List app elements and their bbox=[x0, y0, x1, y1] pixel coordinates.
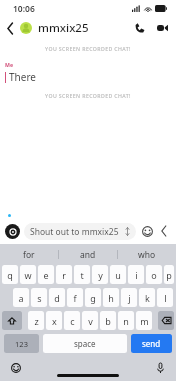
button[interactable]: Profile photo bbox=[20, 22, 32, 34]
staticText: who bbox=[138, 249, 156, 261]
button[interactable]: n bbox=[118, 311, 134, 330]
staticText: u bbox=[115, 269, 121, 281]
staticText: l bbox=[164, 292, 167, 304]
staticText: g bbox=[90, 292, 96, 304]
staticText: s bbox=[37, 292, 42, 304]
staticText: f bbox=[73, 292, 77, 304]
staticText: Me bbox=[5, 61, 13, 68]
staticText: space bbox=[74, 338, 96, 349]
staticText: for bbox=[23, 249, 35, 261]
button[interactable]: for bbox=[0, 244, 58, 265]
button[interactable]: Audio call bbox=[129, 17, 151, 39]
staticText: q bbox=[7, 269, 13, 281]
staticText: j bbox=[128, 292, 131, 304]
staticText: h bbox=[108, 292, 114, 304]
button[interactable]: m bbox=[136, 311, 152, 330]
button[interactable]: f bbox=[67, 288, 83, 307]
button[interactable]: i bbox=[128, 265, 144, 284]
button[interactable]: Video call bbox=[151, 17, 173, 39]
staticText: b bbox=[105, 315, 111, 327]
staticText: o bbox=[151, 269, 157, 281]
staticText: t bbox=[80, 269, 84, 281]
button[interactable]: Camera bbox=[5, 224, 20, 239]
staticText: n bbox=[123, 315, 129, 327]
button[interactable]: Collapse bbox=[157, 224, 171, 238]
staticText: p bbox=[166, 269, 172, 281]
staticText: 10:06 bbox=[13, 3, 35, 15]
staticText: There bbox=[9, 70, 36, 84]
staticText: m bbox=[140, 315, 149, 327]
button[interactable]: Backspace bbox=[158, 311, 174, 330]
button[interactable]: w bbox=[20, 265, 36, 284]
button[interactable]: e bbox=[38, 265, 54, 284]
button[interactable]: Back bbox=[0, 17, 20, 39]
button[interactable]: s bbox=[31, 288, 47, 307]
button[interactable]: t bbox=[74, 265, 90, 284]
button[interactable]: k bbox=[139, 288, 155, 307]
staticText: d bbox=[54, 292, 60, 304]
button[interactable]: d bbox=[49, 288, 65, 307]
button[interactable]: 123 bbox=[4, 334, 39, 353]
button[interactable]: y bbox=[92, 265, 108, 284]
staticText: 123 bbox=[15, 339, 28, 349]
staticText: x bbox=[52, 315, 57, 327]
button[interactable]: g bbox=[85, 288, 101, 307]
button[interactable]: Shout out to mmxix25 bbox=[24, 223, 136, 240]
button[interactable]: b bbox=[100, 311, 116, 330]
button[interactable]: Emoji picker bbox=[140, 224, 154, 238]
staticText: k bbox=[145, 292, 150, 304]
button[interactable]: j bbox=[121, 288, 137, 307]
button[interactable]: h bbox=[103, 288, 119, 307]
button[interactable]: Voice input bbox=[152, 360, 168, 376]
button[interactable]: u bbox=[110, 265, 126, 284]
button[interactable]: p bbox=[164, 265, 174, 284]
button[interactable]: z bbox=[28, 311, 44, 330]
button[interactable]: x bbox=[46, 311, 62, 330]
button[interactable]: and bbox=[59, 244, 117, 265]
staticText: YOU SCREEN RECORDED CHAT! bbox=[0, 92, 176, 99]
staticText: and bbox=[80, 249, 96, 261]
button[interactable]: who bbox=[118, 244, 176, 265]
staticText: YOU SCREEN RECORDED CHAT! bbox=[0, 45, 176, 52]
staticText: v bbox=[88, 315, 93, 327]
button[interactable]: l bbox=[157, 288, 173, 307]
button[interactable]: q bbox=[2, 265, 18, 284]
staticText: w bbox=[24, 269, 32, 281]
button[interactable]: Shift bbox=[2, 311, 22, 330]
staticText: Shout out to mmxix25 bbox=[30, 226, 125, 238]
button[interactable]: o bbox=[146, 265, 162, 284]
staticText: r bbox=[62, 269, 66, 281]
staticText: y bbox=[98, 269, 103, 281]
button[interactable]: Emoji bbox=[8, 360, 24, 376]
staticText: a bbox=[18, 292, 24, 304]
button[interactable]: space bbox=[43, 334, 127, 353]
staticText: send bbox=[142, 338, 161, 349]
button[interactable]: c bbox=[64, 311, 80, 330]
button[interactable]: send bbox=[131, 334, 172, 353]
button[interactable]: r bbox=[56, 265, 72, 284]
staticText: e bbox=[43, 269, 49, 281]
button[interactable]: v bbox=[82, 311, 98, 330]
button[interactable]: mmxix25 bbox=[38, 20, 89, 36]
staticText: i bbox=[135, 269, 138, 281]
staticText: c bbox=[70, 315, 75, 327]
staticText: z bbox=[34, 315, 39, 327]
button[interactable]: a bbox=[13, 288, 29, 307]
